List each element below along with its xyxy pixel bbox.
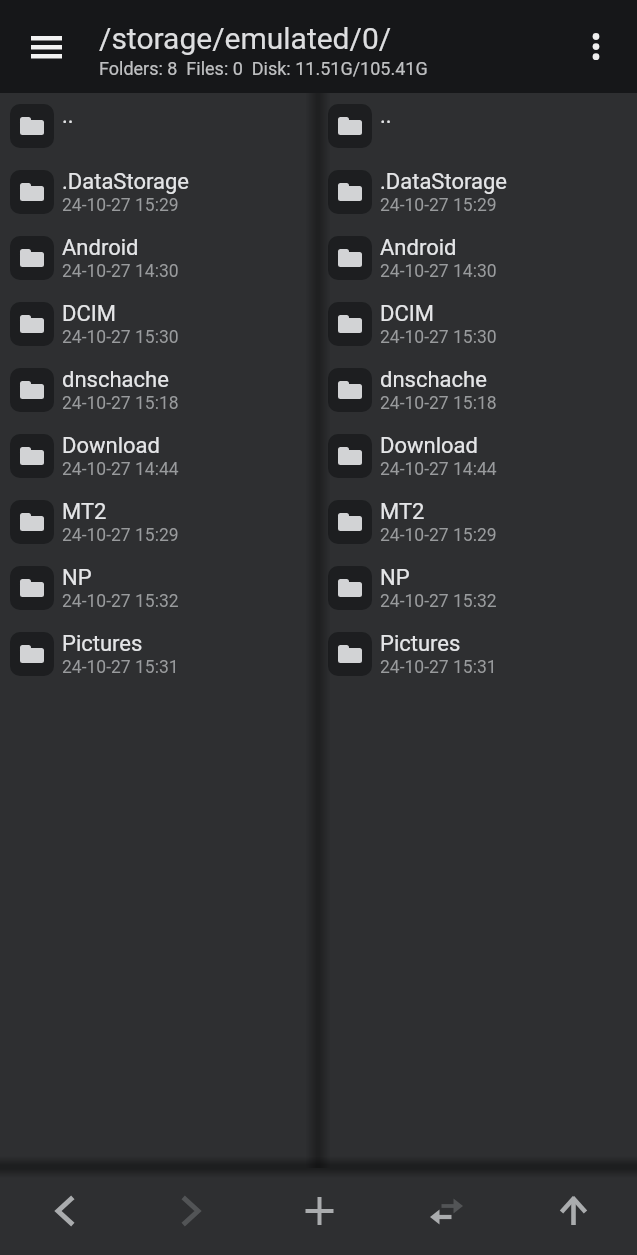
- staticText: dnschache: [380, 367, 487, 393]
- staticText: 24-10-27 15:31: [62, 657, 179, 678]
- button[interactable]: [572, 22, 620, 70]
- staticText: DCIM: [62, 301, 116, 327]
- button[interactable]: [256, 1168, 383, 1255]
- staticText: DCIM: [380, 301, 434, 327]
- staticText: Download: [62, 433, 160, 459]
- staticText: ..: [380, 103, 392, 129]
- staticText: 24-10-27 15:30: [380, 327, 497, 348]
- staticText: 24-10-27 15:29: [380, 195, 497, 216]
- button[interactable]: Download: [318, 423, 637, 489]
- staticText: 24-10-27 15:30: [62, 327, 179, 348]
- staticText: Download: [380, 433, 478, 459]
- button[interactable]: NP: [0, 555, 316, 621]
- staticText: MT2: [62, 499, 107, 525]
- button[interactable]: ..: [318, 93, 637, 159]
- staticText: 24-10-27 15:18: [380, 393, 497, 414]
- staticText: Pictures: [62, 631, 143, 657]
- staticText: MT2: [380, 499, 425, 525]
- button[interactable]: DCIM: [318, 291, 637, 357]
- button[interactable]: NP: [318, 555, 637, 621]
- button[interactable]: MT2: [318, 489, 637, 555]
- staticText: 24-10-27 14:44: [62, 459, 179, 480]
- button[interactable]: .DataStorage: [0, 159, 316, 225]
- staticText: /storage/emulated/0/: [99, 21, 392, 56]
- button[interactable]: DCIM: [0, 291, 316, 357]
- staticText: 24-10-27 14:44: [380, 459, 497, 480]
- button[interactable]: MT2: [0, 489, 316, 555]
- staticText: ..: [62, 103, 74, 129]
- staticText: Pictures: [380, 631, 461, 657]
- button[interactable]: Android: [0, 225, 316, 291]
- staticText: 24-10-27 15:29: [62, 525, 179, 546]
- staticText: Android: [62, 235, 139, 261]
- staticText: 24-10-27 14:30: [380, 261, 497, 282]
- button[interactable]: [383, 1168, 510, 1255]
- button[interactable]: [510, 1168, 637, 1255]
- staticText: 24-10-27 15:18: [62, 393, 179, 414]
- button[interactable]: Pictures: [0, 621, 316, 687]
- button[interactable]: dnschache: [318, 357, 637, 423]
- button[interactable]: Download: [0, 423, 316, 489]
- staticText: .DataStorage: [62, 169, 189, 195]
- staticText: Android: [380, 235, 457, 261]
- staticText: NP: [62, 565, 92, 591]
- button[interactable]: [128, 1168, 256, 1255]
- staticText: NP: [380, 565, 410, 591]
- staticText: 24-10-27 15:32: [380, 591, 497, 612]
- staticText: dnschache: [62, 367, 169, 393]
- button[interactable]: [0, 1168, 128, 1255]
- button[interactable]: Android: [318, 225, 637, 291]
- staticText: 24-10-27 15:31: [380, 657, 497, 678]
- button[interactable]: .DataStorage: [318, 159, 637, 225]
- staticText: .DataStorage: [380, 169, 507, 195]
- staticText: 24-10-27 15:29: [380, 525, 497, 546]
- button[interactable]: ..: [0, 93, 316, 159]
- button[interactable]: Pictures: [318, 621, 637, 687]
- staticText: Folders: 8 Files: 0 Disk: 11.51G/105.41G: [99, 58, 428, 79]
- button[interactable]: [18, 18, 74, 74]
- staticText: 24-10-27 15:29: [62, 195, 179, 216]
- staticText: 24-10-27 15:32: [62, 591, 179, 612]
- button[interactable]: dnschache: [0, 357, 316, 423]
- staticText: 24-10-27 14:30: [62, 261, 179, 282]
